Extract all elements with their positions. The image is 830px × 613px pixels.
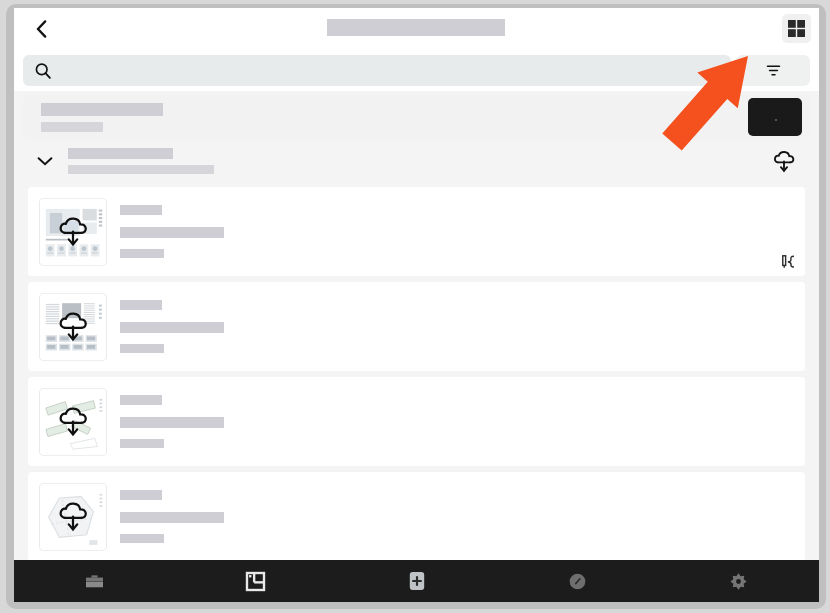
button[interactable]: Markup	[28, 187, 805, 276]
button[interactable]: Measure	[497, 560, 658, 602]
button[interactable]: Projects	[14, 560, 175, 602]
button[interactable]: Collapse section	[32, 148, 58, 174]
button[interactable]: Settings	[658, 560, 819, 602]
button[interactable]: Back	[24, 11, 60, 47]
button[interactable]	[28, 282, 805, 371]
button[interactable]: Filter	[736, 55, 810, 86]
button[interactable]	[23, 55, 731, 86]
button[interactable]: Add	[336, 560, 497, 602]
button[interactable]: Preview	[748, 98, 802, 136]
button[interactable]: Grid view	[782, 14, 811, 43]
button[interactable]	[28, 472, 805, 561]
button[interactable]: Floor plans	[175, 560, 336, 602]
button[interactable]: Download all	[769, 146, 799, 176]
button[interactable]: Markup	[779, 252, 798, 271]
button[interactable]	[28, 377, 805, 466]
button[interactable]	[23, 94, 810, 140]
